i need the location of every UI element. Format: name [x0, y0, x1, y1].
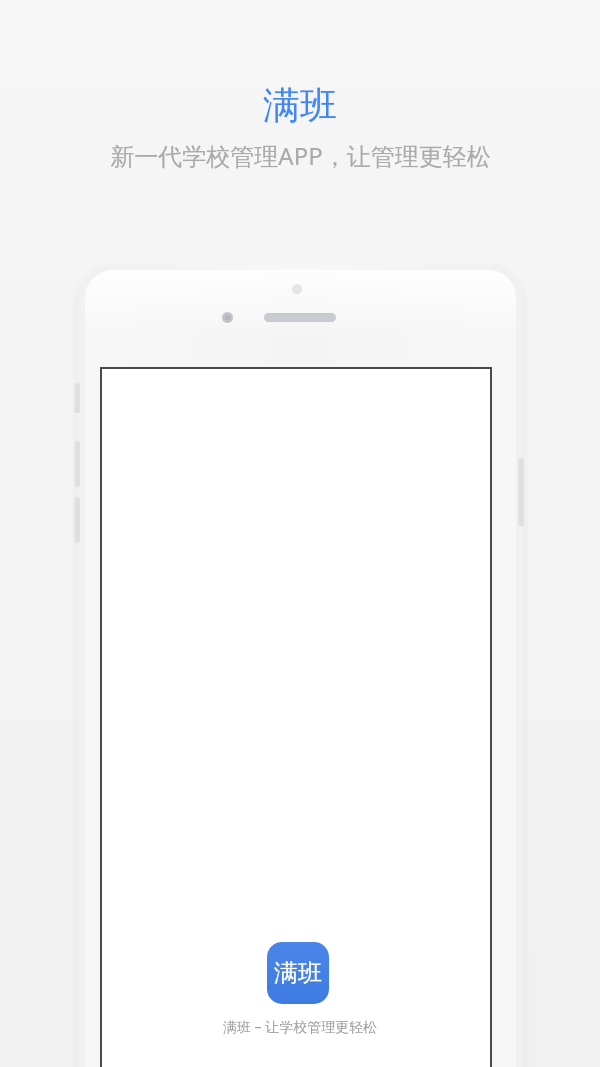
staticText: 满班	[263, 82, 337, 129]
staticText: 满班 – 让学校管理更轻松	[0, 1017, 600, 1067]
staticText: 满班	[274, 958, 322, 988]
staticText: 新一代学校管理APP，让管理更轻松	[110, 139, 491, 172]
button[interactable]: 满班 app icon	[267, 942, 329, 1004]
